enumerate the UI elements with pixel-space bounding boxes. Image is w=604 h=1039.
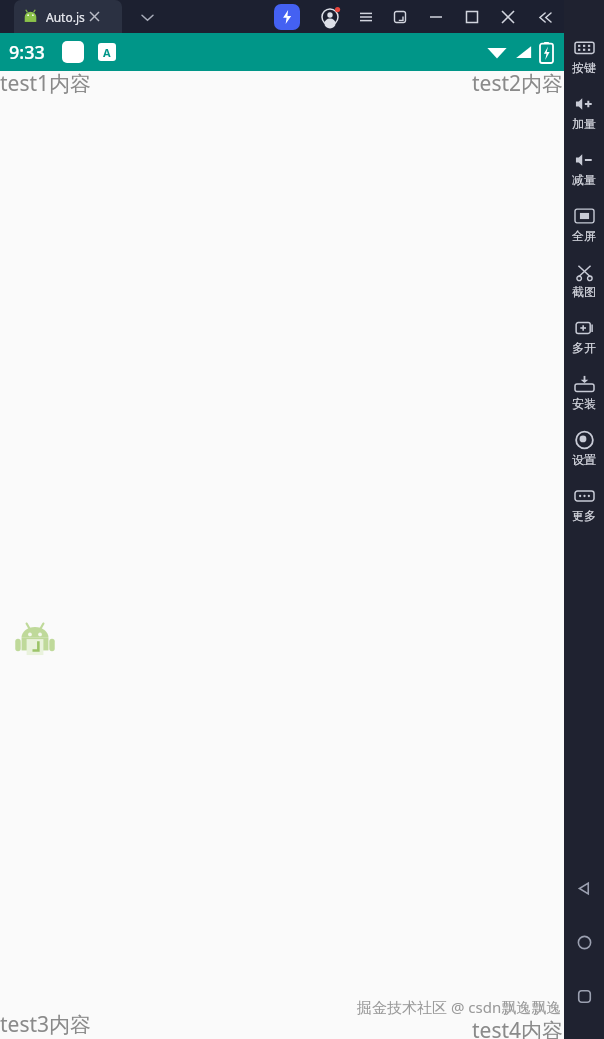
button[interactable]: Minimize: [424, 5, 448, 29]
staticText: 全屏: [572, 228, 596, 243]
staticText: 更多: [572, 508, 596, 523]
staticText: test2内容: [472, 69, 564, 98]
staticText: Auto.js: [46, 9, 85, 25]
button[interactable]: 全屏: [564, 206, 604, 262]
button[interactable]: Recents: [564, 969, 604, 1023]
staticText: 设置: [572, 452, 596, 467]
button[interactable]: 截图: [564, 262, 604, 318]
button[interactable]: Close tab: [89, 11, 100, 22]
staticText: 安装: [572, 396, 596, 411]
staticText: 减量: [572, 172, 596, 187]
button[interactable]: 减量: [564, 150, 604, 206]
button[interactable]: Maximize: [460, 5, 484, 29]
staticText: test1内容: [0, 69, 92, 98]
button[interactable]: 安装: [564, 374, 604, 430]
staticText: test4内容: [472, 1016, 564, 1039]
button[interactable]: Auto.js: [14, 0, 122, 33]
button[interactable]: Home: [564, 915, 604, 969]
button[interactable]: Auto.js: [14, 616, 56, 658]
button[interactable]: Tab list: [132, 2, 162, 32]
button[interactable]: Account: [316, 3, 344, 31]
button[interactable]: Back: [564, 861, 604, 915]
button[interactable]: Boost: [274, 4, 300, 30]
button[interactable]: 按键: [564, 38, 604, 94]
button[interactable]: Menu: [354, 5, 378, 29]
button[interactable]: Screenshot: [388, 5, 412, 29]
button[interactable]: 更多: [564, 486, 604, 542]
staticText: 多开: [572, 340, 596, 355]
button[interactable]: 加量: [564, 94, 604, 150]
staticText: 加量: [572, 116, 596, 131]
button[interactable]: 多开: [564, 318, 604, 374]
staticText: A: [103, 45, 111, 60]
staticText: 截图: [572, 284, 596, 299]
staticText: 掘金技术社区 @ csdn飘逸飘逸: [357, 997, 562, 1017]
staticText: 9:33: [9, 40, 45, 65]
staticText: 按键: [572, 60, 596, 75]
button[interactable]: 设置: [564, 430, 604, 486]
button[interactable]: Close: [496, 5, 520, 29]
staticText: test3内容: [0, 1010, 92, 1039]
button[interactable]: Collapse: [530, 3, 558, 31]
